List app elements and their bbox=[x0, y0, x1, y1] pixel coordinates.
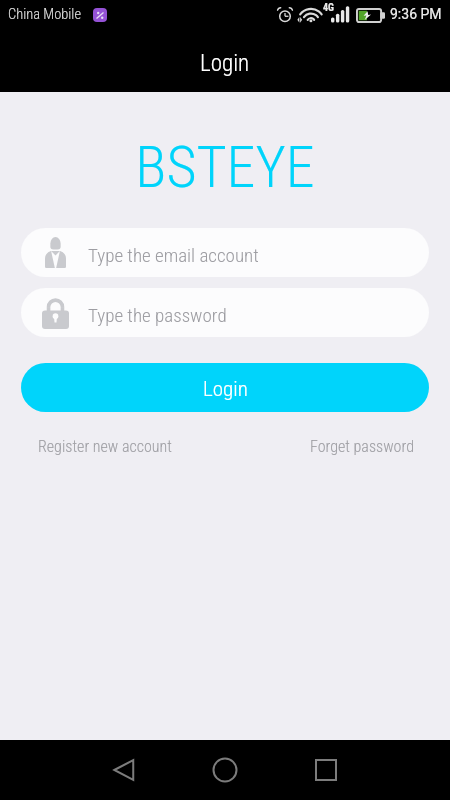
staticText: Register new account bbox=[38, 437, 172, 456]
staticText: Login bbox=[200, 50, 250, 77]
staticText: Type the email account bbox=[88, 244, 259, 266]
staticText: Forget password bbox=[310, 437, 414, 456]
button[interactable]: Type the password bbox=[21, 288, 429, 337]
staticText: 9:36 PM bbox=[390, 6, 442, 22]
staticText: Type the password bbox=[88, 304, 227, 326]
button[interactable]: Back bbox=[100, 740, 148, 800]
staticText: Login bbox=[203, 377, 248, 402]
button[interactable]: Home bbox=[201, 740, 249, 800]
button[interactable]: Forget password bbox=[293, 432, 431, 461]
staticText: 4G bbox=[323, 2, 334, 14]
staticText: China Mobile bbox=[8, 6, 82, 23]
button[interactable]: Recent apps bbox=[302, 740, 350, 800]
button[interactable]: Login bbox=[21, 363, 429, 412]
button[interactable]: Type the email account bbox=[21, 228, 429, 277]
staticText: BSTEYE bbox=[0, 133, 450, 201]
button[interactable]: Register new account bbox=[21, 432, 189, 461]
